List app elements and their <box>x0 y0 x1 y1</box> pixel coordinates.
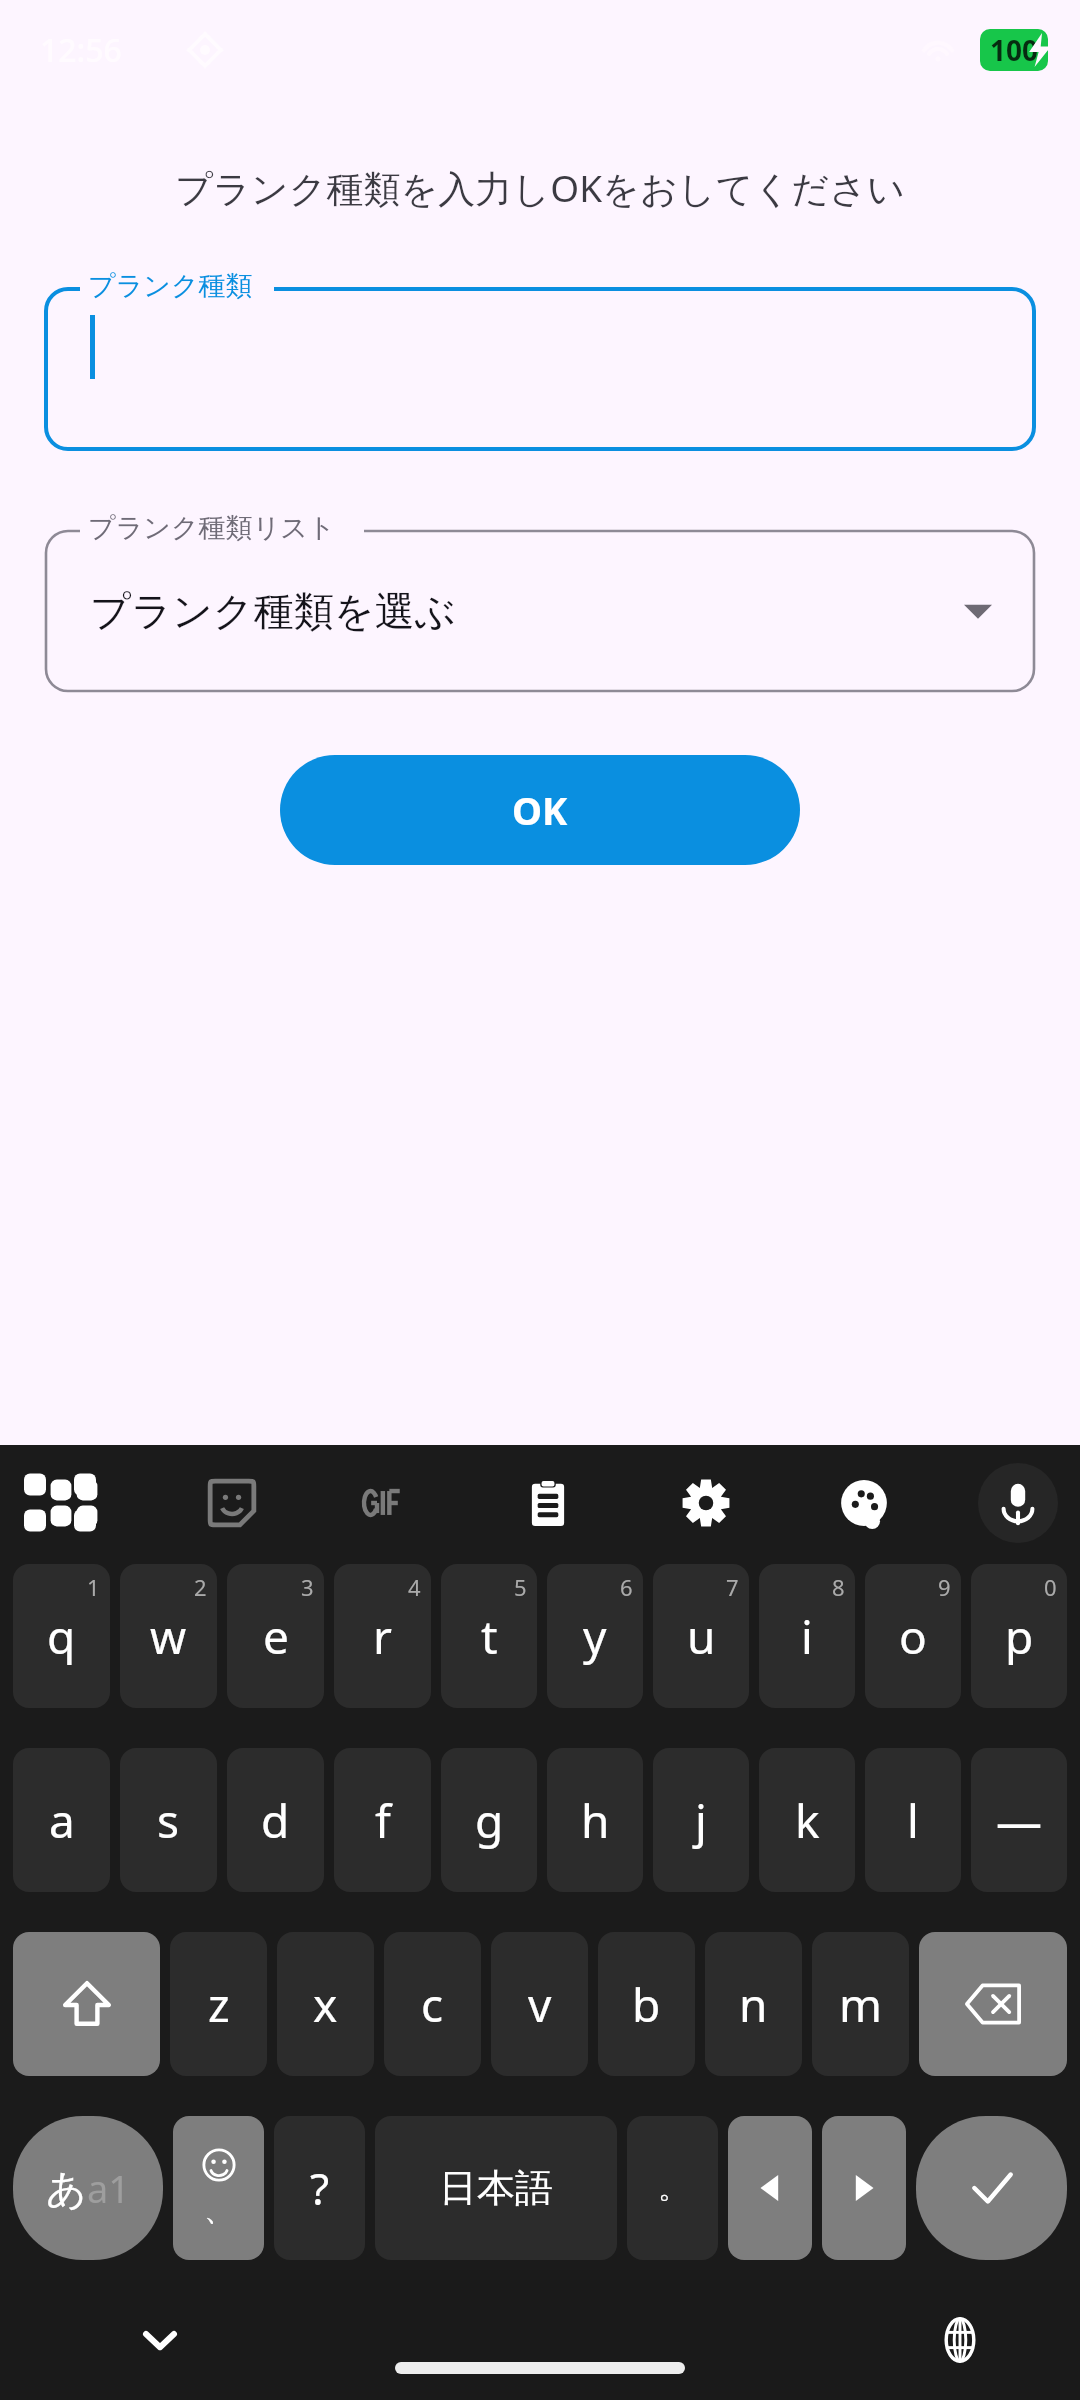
staticText: v <box>528 1973 552 2036</box>
staticText: 1 <box>87 1572 100 1602</box>
staticText: プランク種類リスト <box>88 511 336 545</box>
button[interactable]: t <box>441 1564 537 1708</box>
staticText: g <box>475 1789 504 1852</box>
button[interactable]: b <box>598 1932 695 2076</box>
button[interactable]: y <box>547 1564 643 1708</box>
staticText: w <box>150 1605 187 1668</box>
button[interactable]: o <box>865 1564 961 1708</box>
staticText: プランク種類を選ぶ <box>90 586 964 636</box>
staticText: a <box>49 1789 75 1852</box>
button[interactable]: Emoji <box>173 2116 264 2260</box>
button[interactable]: Stickers <box>196 1467 268 1539</box>
staticText: e <box>263 1605 289 1668</box>
staticText: k <box>795 1789 820 1852</box>
staticText: 4 <box>408 1572 421 1602</box>
button[interactable]: 日本語 <box>375 2116 617 2260</box>
button[interactable]: c <box>384 1932 481 2076</box>
staticText: o <box>899 1605 927 1668</box>
staticText: 8 <box>832 1572 845 1602</box>
button[interactable]: g <box>441 1748 537 1892</box>
staticText: s <box>157 1789 180 1852</box>
button[interactable]: i <box>759 1564 855 1708</box>
staticText: c <box>421 1973 444 2036</box>
button[interactable]: Cursor right <box>822 2116 906 2260</box>
staticText: 6 <box>620 1572 633 1602</box>
staticText: i <box>801 1605 813 1668</box>
button[interactable]: l <box>865 1748 961 1892</box>
button[interactable]: n <box>705 1932 802 2076</box>
button[interactable]: 。 <box>627 2116 718 2260</box>
button[interactable]: d <box>227 1748 324 1892</box>
button[interactable]: ? <box>274 2116 365 2260</box>
button[interactable]: Clipboard <box>512 1467 584 1539</box>
staticText: 7 <box>726 1572 739 1602</box>
button[interactable]: p <box>971 1564 1067 1708</box>
button[interactable]: w <box>120 1564 217 1708</box>
button[interactable]: Themes <box>828 1467 900 1539</box>
button[interactable]: Voice input <box>978 1463 1058 1543</box>
button[interactable]: — <box>971 1748 1067 1892</box>
staticText: x <box>313 1973 338 2036</box>
button[interactable]: Hide keyboard <box>118 2298 202 2382</box>
button[interactable]: プランク種類 入力欄 <box>46 269 1034 449</box>
staticText: プランク種類 <box>88 269 253 303</box>
staticText: 。 <box>658 2169 688 2207</box>
button[interactable]: k <box>759 1748 855 1892</box>
button[interactable]: OK <box>280 755 800 865</box>
button[interactable]: x <box>277 1932 374 2076</box>
staticText: d <box>261 1789 290 1852</box>
button[interactable]: r <box>334 1564 431 1708</box>
button[interactable]: Change language <box>918 2298 1002 2382</box>
button[interactable]: Keyboard layouts <box>38 1467 110 1539</box>
staticText: 9 <box>938 1572 951 1602</box>
button[interactable]: j <box>653 1748 749 1892</box>
button[interactable]: Confirm <box>916 2116 1067 2260</box>
staticText: 2 <box>194 1572 207 1602</box>
staticText: y <box>583 1605 607 1668</box>
staticText: 0 <box>1044 1572 1057 1602</box>
staticText: n <box>739 1973 768 2036</box>
staticText: f <box>375 1789 391 1852</box>
staticText: t <box>481 1605 498 1668</box>
staticText: 、 <box>204 2191 234 2229</box>
button[interactable]: プランク種類リスト <box>46 511 1034 691</box>
staticText: q <box>47 1605 76 1668</box>
staticText: 3 <box>301 1572 314 1602</box>
button[interactable]: GIF <box>354 1467 426 1539</box>
button[interactable]: e <box>227 1564 324 1708</box>
staticText: p <box>1005 1605 1034 1668</box>
staticText: l <box>907 1789 919 1852</box>
staticText: あ <box>46 2164 87 2214</box>
button[interactable]: Cursor left <box>728 2116 812 2260</box>
staticText: h <box>581 1789 610 1852</box>
staticText: m <box>839 1973 883 2036</box>
staticText: ? <box>310 2158 330 2218</box>
button[interactable]: f <box>334 1748 431 1892</box>
button[interactable]: s <box>120 1748 217 1892</box>
button[interactable]: m <box>812 1932 909 2076</box>
staticText: j <box>695 1789 707 1852</box>
staticText: r <box>373 1605 392 1668</box>
staticText: 日本語 <box>439 2164 553 2212</box>
button[interactable]: Settings <box>670 1467 742 1539</box>
button[interactable]: Backspace <box>919 1932 1067 2076</box>
staticText: — <box>996 1789 1042 1852</box>
button[interactable]: q <box>13 1564 110 1708</box>
button[interactable]: h <box>547 1748 643 1892</box>
button[interactable]: v <box>491 1932 588 2076</box>
staticText: プランク種類を入力しOKをおしてください <box>24 162 1056 213</box>
staticText: 5 <box>514 1572 527 1602</box>
button[interactable]: u <box>653 1564 749 1708</box>
staticText: z <box>208 1973 230 2036</box>
button[interactable]: a <box>13 1748 110 1892</box>
button[interactable]: z <box>170 1932 267 2076</box>
staticText: b <box>632 1973 661 2036</box>
staticText: 100 <box>990 31 1039 69</box>
staticText: a1 <box>87 2162 131 2214</box>
button[interactable]: Shift <box>13 1932 160 2076</box>
staticText: u <box>687 1605 716 1668</box>
staticText: OK <box>512 784 568 836</box>
button[interactable]: Switch input mode <box>13 2116 163 2260</box>
